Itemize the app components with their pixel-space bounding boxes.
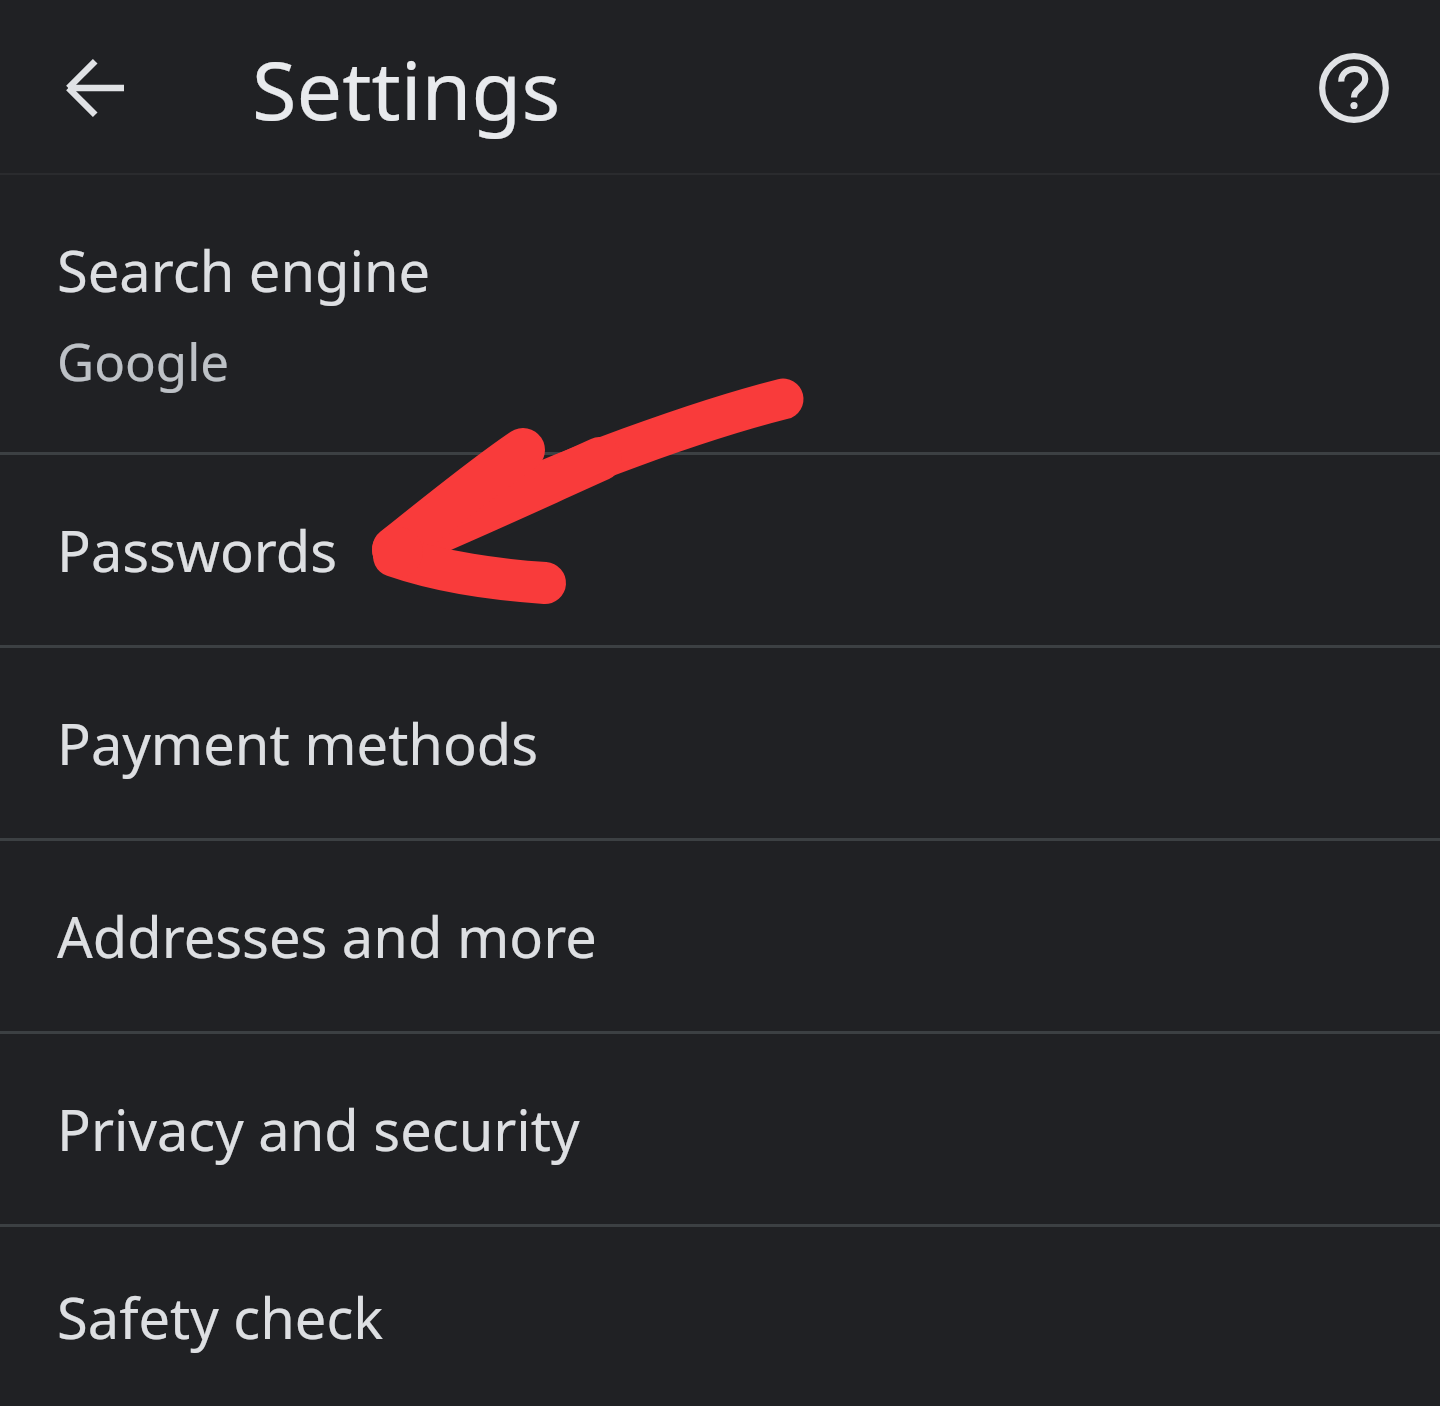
staticText: Addresses and more (57, 898, 597, 974)
button[interactable]: Payment methods (0, 648, 1440, 838)
staticText: Google (57, 326, 230, 395)
staticText: Search engine (57, 232, 431, 308)
button[interactable]: Privacy and security (0, 1034, 1440, 1224)
staticText: Passwords (57, 512, 338, 588)
staticText: Settings (252, 33, 561, 143)
staticText: Payment methods (57, 705, 539, 781)
staticText: Safety check (57, 1279, 384, 1355)
button[interactable]: Passwords (0, 455, 1440, 645)
button[interactable]: Back (30, 18, 170, 158)
button[interactable]: Help and feedback (1286, 20, 1422, 156)
button[interactable]: Search engine (0, 175, 1440, 452)
button[interactable]: Addresses and more (0, 841, 1440, 1031)
staticText: Privacy and security (57, 1091, 580, 1167)
button[interactable]: Safety check (0, 1227, 1440, 1406)
